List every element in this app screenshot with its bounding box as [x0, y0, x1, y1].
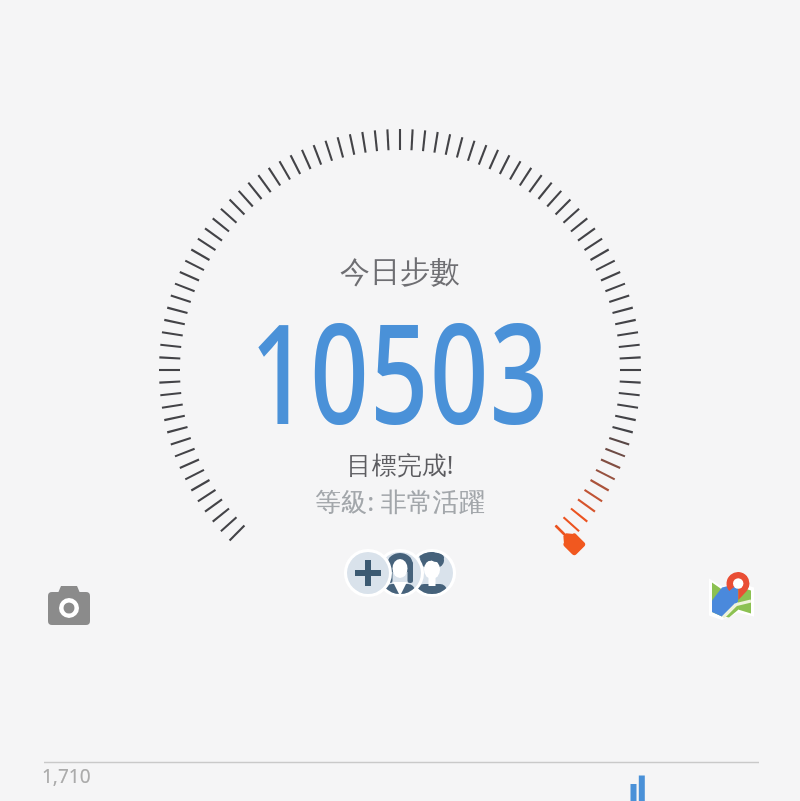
staticText: 目標完成!	[0, 447, 800, 481]
staticText: 今日步數	[0, 253, 800, 291]
staticText: 10503	[104, 276, 696, 464]
button[interactable]	[702, 566, 762, 624]
staticText: 等級: 非常活躍	[0, 483, 800, 519]
button[interactable]	[344, 549, 456, 597]
button[interactable]	[44, 582, 94, 630]
staticText: 1,710	[42, 763, 91, 789]
